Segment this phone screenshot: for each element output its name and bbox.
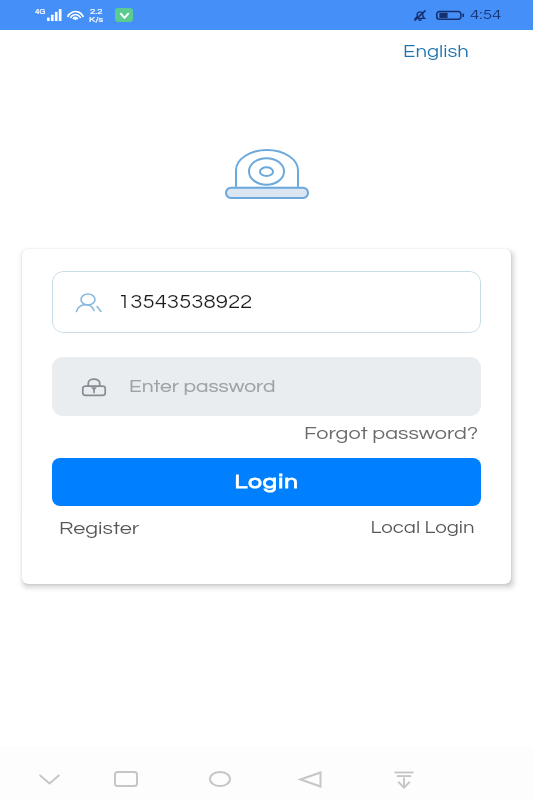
staticText: Forgot password? xyxy=(304,424,478,443)
staticText: K/s xyxy=(89,15,103,23)
button[interactable]: Hide keyboard xyxy=(25,755,73,800)
staticText: 4G xyxy=(35,7,46,15)
staticText: Enter password xyxy=(129,378,277,396)
button[interactable]: English xyxy=(394,30,533,66)
button[interactable]: Recent apps xyxy=(102,755,150,800)
button[interactable]: Register xyxy=(52,515,126,542)
button[interactable]: Forgot password? xyxy=(323,416,481,458)
button[interactable]: Download xyxy=(380,755,428,800)
button[interactable]: Home xyxy=(196,755,244,800)
staticText: Register xyxy=(59,519,139,538)
staticText: Local Login xyxy=(371,519,475,537)
button[interactable]: Login xyxy=(52,458,481,506)
staticText: 4:54 xyxy=(470,8,501,22)
button[interactable]: Enter password xyxy=(52,357,481,416)
staticText: 2.2 xyxy=(90,7,103,15)
staticText: 13543538922 xyxy=(118,293,252,312)
button[interactable]: 13543538922 xyxy=(52,271,481,333)
staticText: Login xyxy=(235,472,299,493)
staticText: English xyxy=(403,43,469,60)
button[interactable]: Local Login xyxy=(388,515,481,541)
button[interactable]: Back xyxy=(286,755,334,800)
